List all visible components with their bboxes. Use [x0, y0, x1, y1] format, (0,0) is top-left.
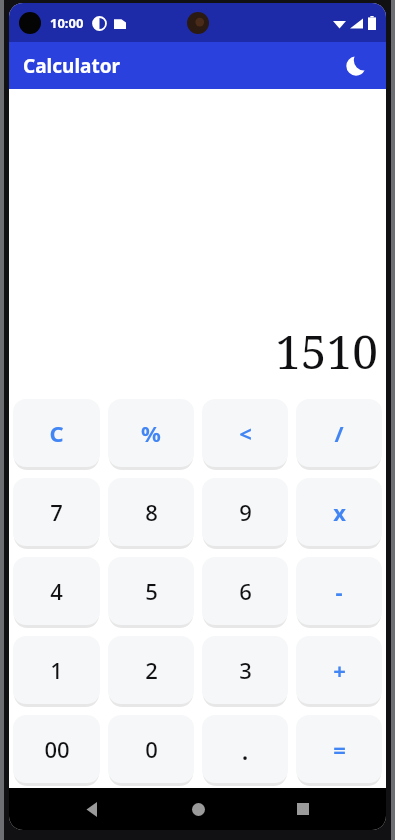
button[interactable]: Recent apps [281, 788, 325, 830]
staticText: 2 [145, 655, 158, 685]
button[interactable]: 2 [108, 636, 194, 704]
staticText: 8 [145, 497, 158, 527]
staticText: 10:00 [50, 14, 84, 32]
button[interactable]: Toggle dark mode [336, 46, 376, 86]
staticText: % [141, 418, 161, 448]
button[interactable]: % [108, 399, 194, 467]
button[interactable]: 8 [108, 478, 194, 546]
staticText: 6 [239, 576, 252, 606]
button[interactable]: C [13, 399, 100, 467]
staticText: 4 [50, 576, 63, 606]
button[interactable]: + [296, 636, 382, 704]
button[interactable]: 3 [202, 636, 288, 704]
button[interactable]: . [202, 715, 288, 783]
staticText: x [333, 497, 346, 527]
button[interactable]: 1 [13, 636, 100, 704]
button[interactable]: 7 [13, 478, 100, 546]
button[interactable]: 0 [108, 715, 194, 783]
button[interactable]: 6 [202, 557, 288, 625]
staticText: . [241, 732, 249, 767]
staticText: < [239, 418, 252, 448]
button[interactable]: Back [70, 788, 114, 830]
staticText: 9 [239, 497, 252, 527]
staticText: Calculator [23, 53, 121, 79]
staticText: + [333, 655, 346, 685]
button[interactable]: Home [176, 788, 220, 830]
button[interactable]: / [296, 399, 382, 467]
button[interactable]: 00 [13, 715, 100, 783]
button[interactable]: 9 [202, 478, 288, 546]
staticText: 1 [50, 655, 63, 685]
staticText: - [335, 576, 343, 606]
button[interactable]: x [296, 478, 382, 546]
button[interactable]: - [296, 557, 382, 625]
staticText: 0 [145, 734, 158, 764]
button[interactable]: < [202, 399, 288, 467]
staticText: / [334, 418, 344, 448]
staticText: 3 [239, 655, 252, 685]
staticText: = [333, 734, 346, 764]
staticText: 5 [145, 576, 158, 606]
staticText: 00 [44, 734, 70, 764]
staticText: 7 [50, 497, 63, 527]
staticText: 1510 [275, 320, 378, 383]
button[interactable]: = [296, 715, 382, 783]
button[interactable]: 4 [13, 557, 100, 625]
staticText: C [49, 418, 64, 448]
button[interactable]: 5 [108, 557, 194, 625]
